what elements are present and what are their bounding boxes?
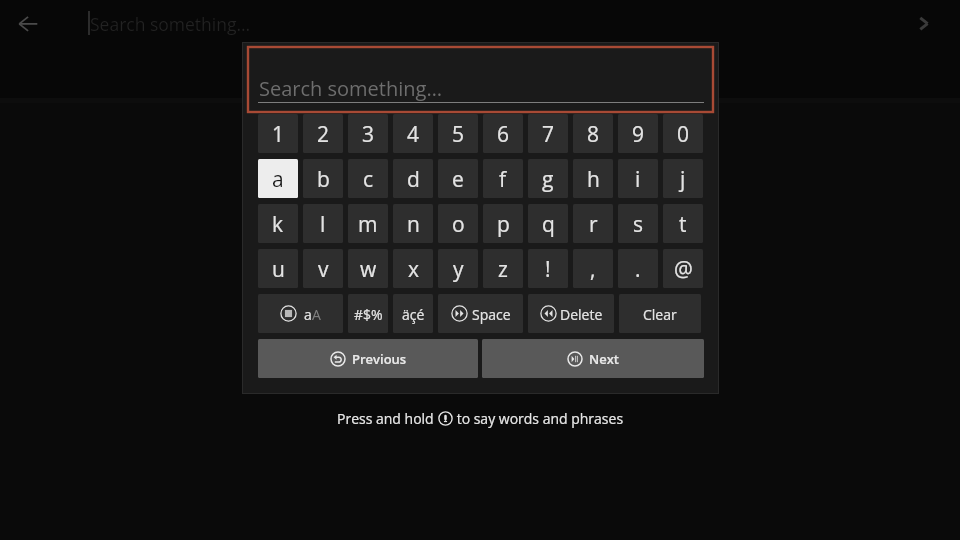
button[interactable]: s [618,204,658,243]
button[interactable]: Symbols [348,294,388,333]
button[interactable]: Toggle capitals [258,294,343,333]
button[interactable]: w [348,249,388,288]
staticText: Next [589,350,619,368]
staticText: Space [472,305,511,324]
button[interactable]: e [438,159,478,198]
staticText: Previous [352,350,407,368]
button[interactable]: Delete [528,294,614,333]
button[interactable]: j [663,159,703,198]
button[interactable]: Next [482,339,704,378]
staticText: , [590,255,596,284]
staticText: 1 [272,120,285,149]
button[interactable]: 2 [303,114,343,153]
staticText: to say words and phrases [453,409,624,428]
staticText: 4 [407,120,420,149]
staticText: w [360,255,377,284]
button[interactable]: Previous [258,339,478,378]
button[interactable]: m [348,204,388,243]
staticText: q [542,210,555,239]
staticText: u [272,255,285,284]
staticText: k [272,210,284,239]
button[interactable]: n [393,204,433,243]
staticText: ! [545,255,551,284]
button[interactable]: @ [663,249,703,288]
staticText: äçé [402,305,425,324]
button[interactable]: x [393,249,433,288]
staticText: n [407,210,420,239]
button[interactable]: l [303,204,343,243]
staticText: y [453,255,464,284]
button[interactable]: 5 [438,114,478,153]
staticText: x [408,255,419,284]
button[interactable]: Forward [906,6,942,42]
button[interactable]: . [618,249,658,288]
staticText: Press and hold [337,409,438,428]
staticText: b [317,165,330,194]
staticText: A [312,305,321,324]
staticText: f [499,165,507,194]
button[interactable]: Accents [393,294,433,333]
staticText: @ [674,255,693,284]
button[interactable]: Clear [619,294,701,333]
staticText: 7 [542,120,555,149]
button[interactable]: t [663,204,703,243]
button[interactable]: r [573,204,613,243]
staticText: Search something… [259,75,442,102]
staticText: i [635,165,641,194]
staticText: a [304,305,312,324]
staticText: o [452,210,465,239]
button[interactable]: a [258,159,298,198]
button[interactable]: v [303,249,343,288]
staticText: a [272,165,284,194]
button[interactable]: , [573,249,613,288]
staticText: d [407,165,420,194]
button[interactable]: 3 [348,114,388,153]
staticText: Search something… [90,12,251,36]
button[interactable]: 6 [483,114,523,153]
button[interactable]: 1 [258,114,298,153]
staticText: c [363,165,374,194]
staticText: j [680,165,686,194]
button[interactable]: i [618,159,658,198]
button[interactable]: 9 [618,114,658,153]
button[interactable]: z [483,249,523,288]
button[interactable]: b [303,159,343,198]
button[interactable]: ! [528,249,568,288]
button[interactable]: p [483,204,523,243]
button[interactable]: u [258,249,298,288]
button[interactable]: 8 [573,114,613,153]
staticText: v [318,255,329,284]
button[interactable]: 4 [393,114,433,153]
button[interactable]: Space [438,294,523,333]
button[interactable]: 0 [663,114,703,153]
button[interactable]: Back [7,6,43,42]
staticText: 5 [452,120,465,149]
staticText: . [635,255,641,284]
staticText: s [633,210,644,239]
staticText: 3 [362,120,375,149]
button[interactable]: g [528,159,568,198]
button[interactable]: o [438,204,478,243]
staticText: t [679,210,687,239]
staticText: Clear [643,305,677,324]
button[interactable]: q [528,204,568,243]
staticText: r [589,210,598,239]
button[interactable]: y [438,249,478,288]
button[interactable]: c [348,159,388,198]
staticText: Delete [560,305,603,324]
staticText: z [498,255,508,284]
button[interactable]: d [393,159,433,198]
button[interactable]: 7 [528,114,568,153]
button[interactable]: f [483,159,523,198]
staticText: #$% [354,305,383,324]
staticText: e [452,165,464,194]
button[interactable]: h [573,159,613,198]
staticText: 6 [497,120,510,149]
staticText: 0 [677,120,690,149]
staticText: 9 [632,120,645,149]
staticText: m [358,210,378,239]
button[interactable]: k [258,204,298,243]
staticText: 8 [587,120,600,149]
staticText: g [542,165,554,194]
staticText: l [320,210,326,239]
